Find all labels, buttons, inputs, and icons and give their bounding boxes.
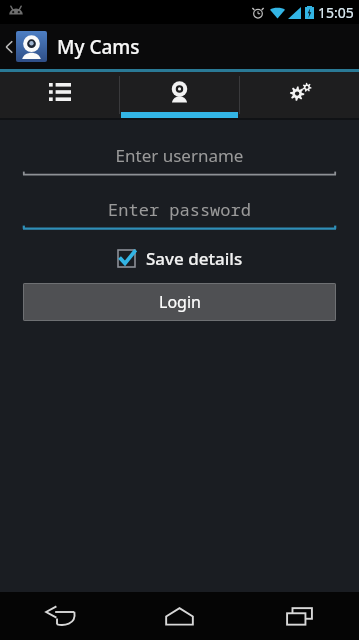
button[interactable]: Login — [23, 283, 336, 321]
button[interactable]: Save details — [0, 244, 359, 272]
staticText: Save details — [146, 247, 243, 270]
staticText: My Cams — [57, 34, 140, 60]
button[interactable]: Enter password — [23, 196, 336, 231]
button[interactable]: Back — [0, 592, 119, 640]
button[interactable]: List of cameras — [0, 72, 119, 118]
button[interactable]: Settings — [240, 72, 359, 118]
staticText: Enter username — [23, 144, 336, 167]
button[interactable]: Recent apps — [239, 592, 359, 640]
button[interactable]: Home — [119, 592, 239, 640]
button[interactable]: Camera view — [120, 72, 239, 118]
other: Navigate up — [4, 38, 15, 56]
button[interactable]: Navigate up — [4, 24, 140, 69]
staticText: 15:05 — [318, 3, 354, 22]
button[interactable]: Enter username — [23, 142, 336, 177]
staticText: Enter password — [23, 198, 336, 221]
staticText: Login — [159, 291, 201, 313]
